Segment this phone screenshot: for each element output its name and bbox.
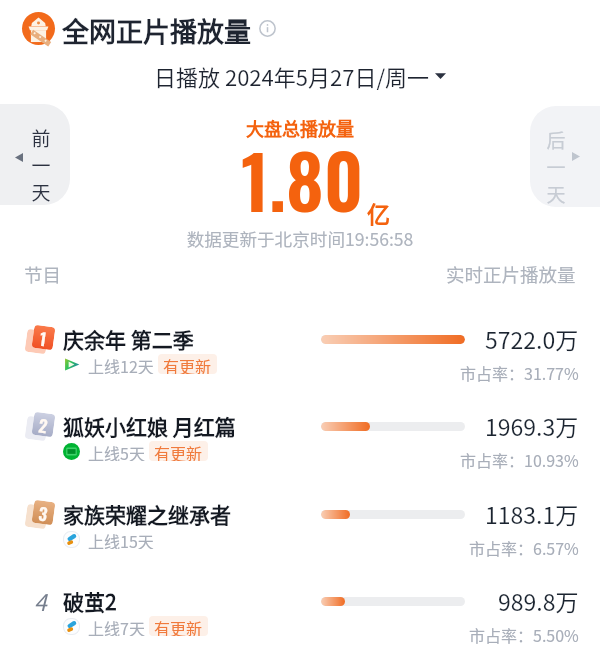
button[interactable]: 3	[0, 495, 600, 559]
staticText: 亿	[367, 196, 390, 229]
staticText: 有更新	[163, 354, 212, 374]
staticText: 上线15天	[88, 529, 154, 549]
staticText: 庆余年 第二季	[63, 324, 194, 354]
staticText: 1183.1万	[485, 497, 579, 530]
staticText: 节目	[24, 261, 62, 288]
staticText: 全网正片播放量	[62, 11, 251, 45]
staticText: 989.8万	[498, 584, 579, 617]
staticText: 市占率：5.50%	[469, 623, 579, 646]
staticText: 1	[38, 326, 48, 349]
staticText: 有更新	[154, 616, 203, 636]
staticText: 实时正片播放量	[446, 261, 576, 288]
staticText: 4	[34, 584, 47, 617]
staticText: 1969.3万	[485, 409, 579, 442]
staticText: 上线7天	[88, 616, 145, 636]
staticText: 狐妖小红娘 月红篇	[63, 411, 236, 441]
staticText: 数据更新于北京时间19:56:58	[0, 226, 600, 251]
staticText: 1.80	[241, 125, 364, 233]
staticText: 上线12天	[88, 354, 154, 374]
staticText: 后 一 天	[546, 126, 566, 207]
staticText: 市占率：31.77%	[460, 361, 579, 384]
staticText: 前 一 天	[31, 124, 51, 205]
button[interactable]: 日播放 2024年5月27日/周一	[154, 60, 446, 92]
staticText: 市占率：10.93%	[460, 448, 579, 471]
staticText: 3	[37, 500, 49, 524]
button[interactable]: 4	[0, 582, 600, 646]
staticText: 5722.0万	[485, 322, 579, 355]
staticText: 大盘总播放量	[0, 115, 600, 141]
staticText: 有更新	[154, 441, 203, 461]
staticText: 上线5天	[88, 441, 145, 461]
staticText: 破茧2	[63, 586, 117, 616]
button[interactable]: 前一天	[0, 104, 70, 205]
button[interactable]: 后一天	[530, 106, 600, 207]
staticText: 2	[37, 412, 49, 436]
staticText: 市占率：6.57%	[469, 536, 579, 559]
staticText: 家族荣耀之继承者	[63, 499, 231, 529]
staticText: 日播放 2024年5月27日/周一	[154, 60, 430, 92]
button[interactable]: 1	[0, 320, 600, 384]
button[interactable]: 2	[0, 407, 600, 471]
button[interactable]: 全网正片播放量	[22, 11, 276, 45]
